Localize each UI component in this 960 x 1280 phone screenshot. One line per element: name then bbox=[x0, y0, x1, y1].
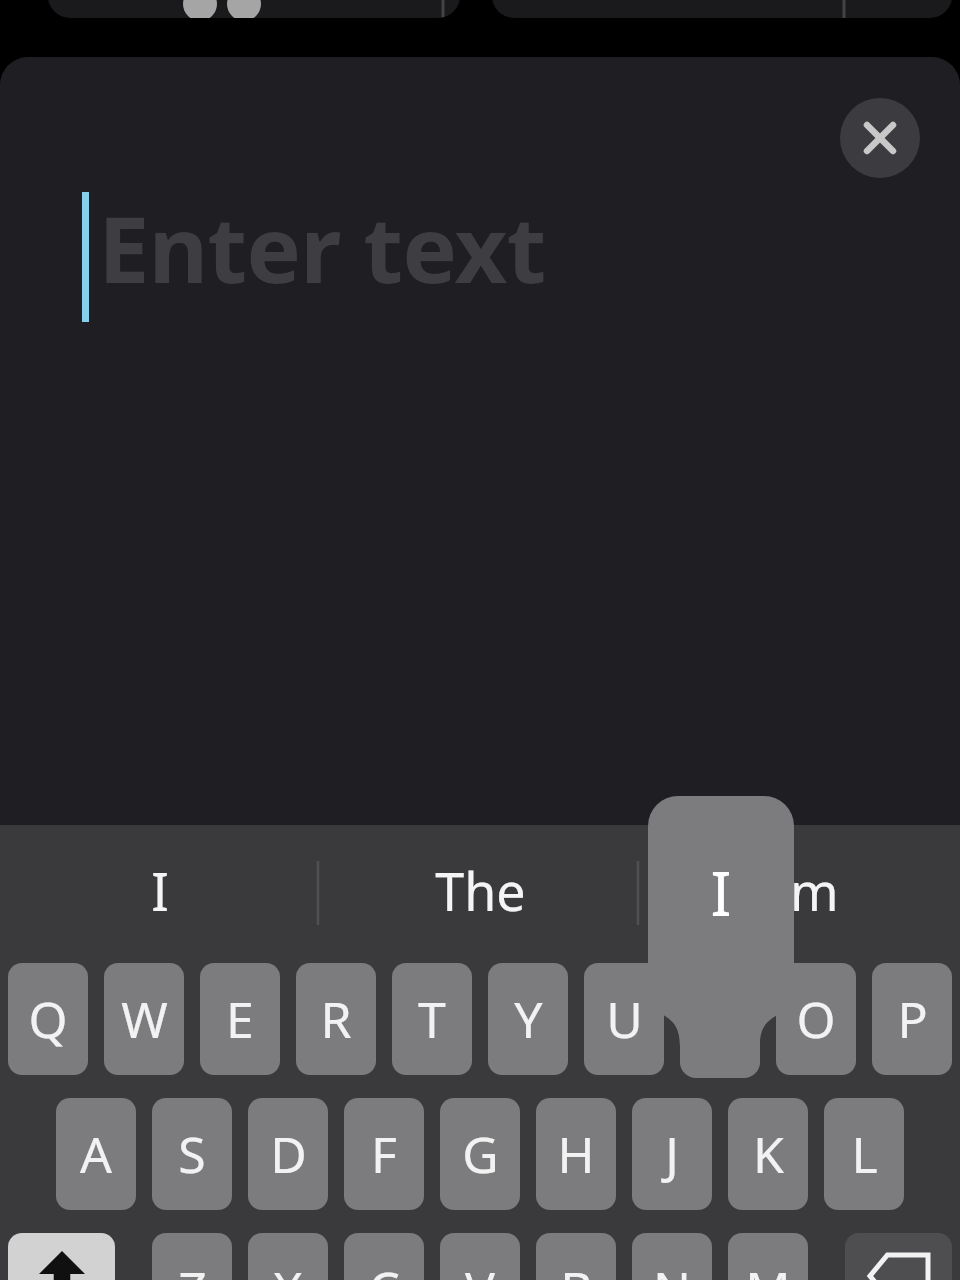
button[interactable]: Shift bbox=[8, 1233, 115, 1280]
staticText: N bbox=[653, 1255, 691, 1280]
button[interactable]: M bbox=[728, 1233, 808, 1280]
staticText: T bbox=[418, 985, 446, 1053]
staticText: B bbox=[560, 1255, 593, 1280]
button[interactable]: U bbox=[584, 963, 664, 1075]
staticText: O bbox=[796, 985, 836, 1053]
button[interactable]: Q bbox=[8, 963, 88, 1075]
staticText: L bbox=[851, 1120, 878, 1188]
staticText: A bbox=[80, 1120, 112, 1188]
button[interactable]: I'm bbox=[640, 825, 960, 955]
button[interactable]: R bbox=[296, 963, 376, 1075]
button[interactable]: L bbox=[824, 1098, 904, 1210]
button[interactable]: F bbox=[344, 1098, 424, 1210]
staticText: J bbox=[665, 1120, 679, 1188]
button[interactable]: I key preview bbox=[648, 796, 794, 1078]
button[interactable]: N bbox=[632, 1233, 712, 1280]
staticText: E bbox=[226, 985, 254, 1053]
staticText: The bbox=[435, 855, 526, 926]
staticText: X bbox=[273, 1255, 303, 1280]
button[interactable]: I bbox=[0, 825, 320, 955]
button[interactable] bbox=[48, 0, 460, 18]
button[interactable]: C bbox=[344, 1233, 424, 1280]
button[interactable]: K bbox=[728, 1098, 808, 1210]
button[interactable]: The bbox=[320, 825, 640, 955]
button[interactable]: Z bbox=[152, 1233, 232, 1280]
button[interactable]: G bbox=[440, 1098, 520, 1210]
button[interactable]: E bbox=[200, 963, 280, 1075]
button[interactable]: W bbox=[104, 963, 184, 1075]
staticText: H bbox=[557, 1120, 595, 1188]
button[interactable]: S bbox=[152, 1098, 232, 1210]
staticText: W bbox=[121, 985, 168, 1053]
button[interactable]: O bbox=[776, 963, 856, 1075]
staticText: I bbox=[151, 855, 169, 926]
button[interactable]: D bbox=[248, 1098, 328, 1210]
staticText: I'm bbox=[762, 855, 839, 926]
button[interactable]: B bbox=[536, 1233, 616, 1280]
button[interactable]: X bbox=[248, 1233, 328, 1280]
button[interactable]: H bbox=[536, 1098, 616, 1210]
staticText: V bbox=[465, 1255, 495, 1280]
staticText: U bbox=[606, 985, 643, 1053]
staticText: D bbox=[270, 1120, 307, 1188]
staticText: G bbox=[462, 1120, 499, 1188]
staticText: I bbox=[710, 850, 732, 934]
staticText: P bbox=[897, 985, 928, 1053]
button[interactable]: Backspace bbox=[845, 1233, 952, 1280]
button[interactable]: T bbox=[392, 963, 472, 1075]
button[interactable] bbox=[492, 0, 952, 18]
staticText: K bbox=[753, 1120, 784, 1188]
staticText: R bbox=[320, 985, 352, 1053]
staticText: Enter text bbox=[98, 185, 546, 310]
button[interactable]: P bbox=[872, 963, 952, 1075]
button[interactable]: Y bbox=[488, 963, 568, 1075]
button[interactable]: A bbox=[56, 1098, 136, 1210]
staticText: Q bbox=[28, 985, 68, 1053]
staticText: F bbox=[371, 1120, 397, 1188]
staticText: M bbox=[745, 1255, 791, 1280]
staticText: C bbox=[368, 1255, 400, 1280]
staticText: Y bbox=[514, 985, 543, 1053]
button[interactable]: Close bbox=[840, 98, 920, 178]
button[interactable]: I bbox=[680, 963, 760, 1075]
button[interactable]: Enter text bbox=[78, 187, 960, 327]
button[interactable]: V bbox=[440, 1233, 520, 1280]
staticText: S bbox=[178, 1120, 206, 1188]
button[interactable]: J bbox=[632, 1098, 712, 1210]
staticText: Z bbox=[178, 1255, 207, 1280]
